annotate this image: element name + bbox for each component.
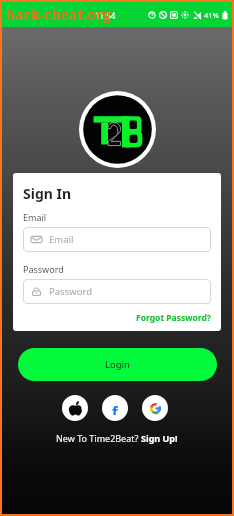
staticText: 11:54 [95,10,116,21]
button[interactable]: Password [23,279,211,304]
button[interactable]: Sign in with Google [142,395,168,421]
staticText: Password [23,263,64,275]
staticText: Password [49,285,92,298]
staticText: New To Time2Beat? [56,432,141,444]
button[interactable]: Sign Up! [141,432,178,444]
staticText: f [112,401,118,415]
staticText: Email [23,211,47,223]
button[interactable]: Email [23,227,211,252]
button[interactable]: Sign in with Apple [62,395,88,421]
button[interactable]: Sign in with Facebook [102,395,128,421]
button[interactable]: Forgot Password? [136,312,211,324]
staticText: Email [49,233,74,246]
staticText: Login [105,358,130,371]
staticText: Sign In [23,184,72,203]
staticText: hack-cheat.org [6,5,112,24]
staticText: 41% [204,10,219,20]
button[interactable]: Login [18,348,217,381]
